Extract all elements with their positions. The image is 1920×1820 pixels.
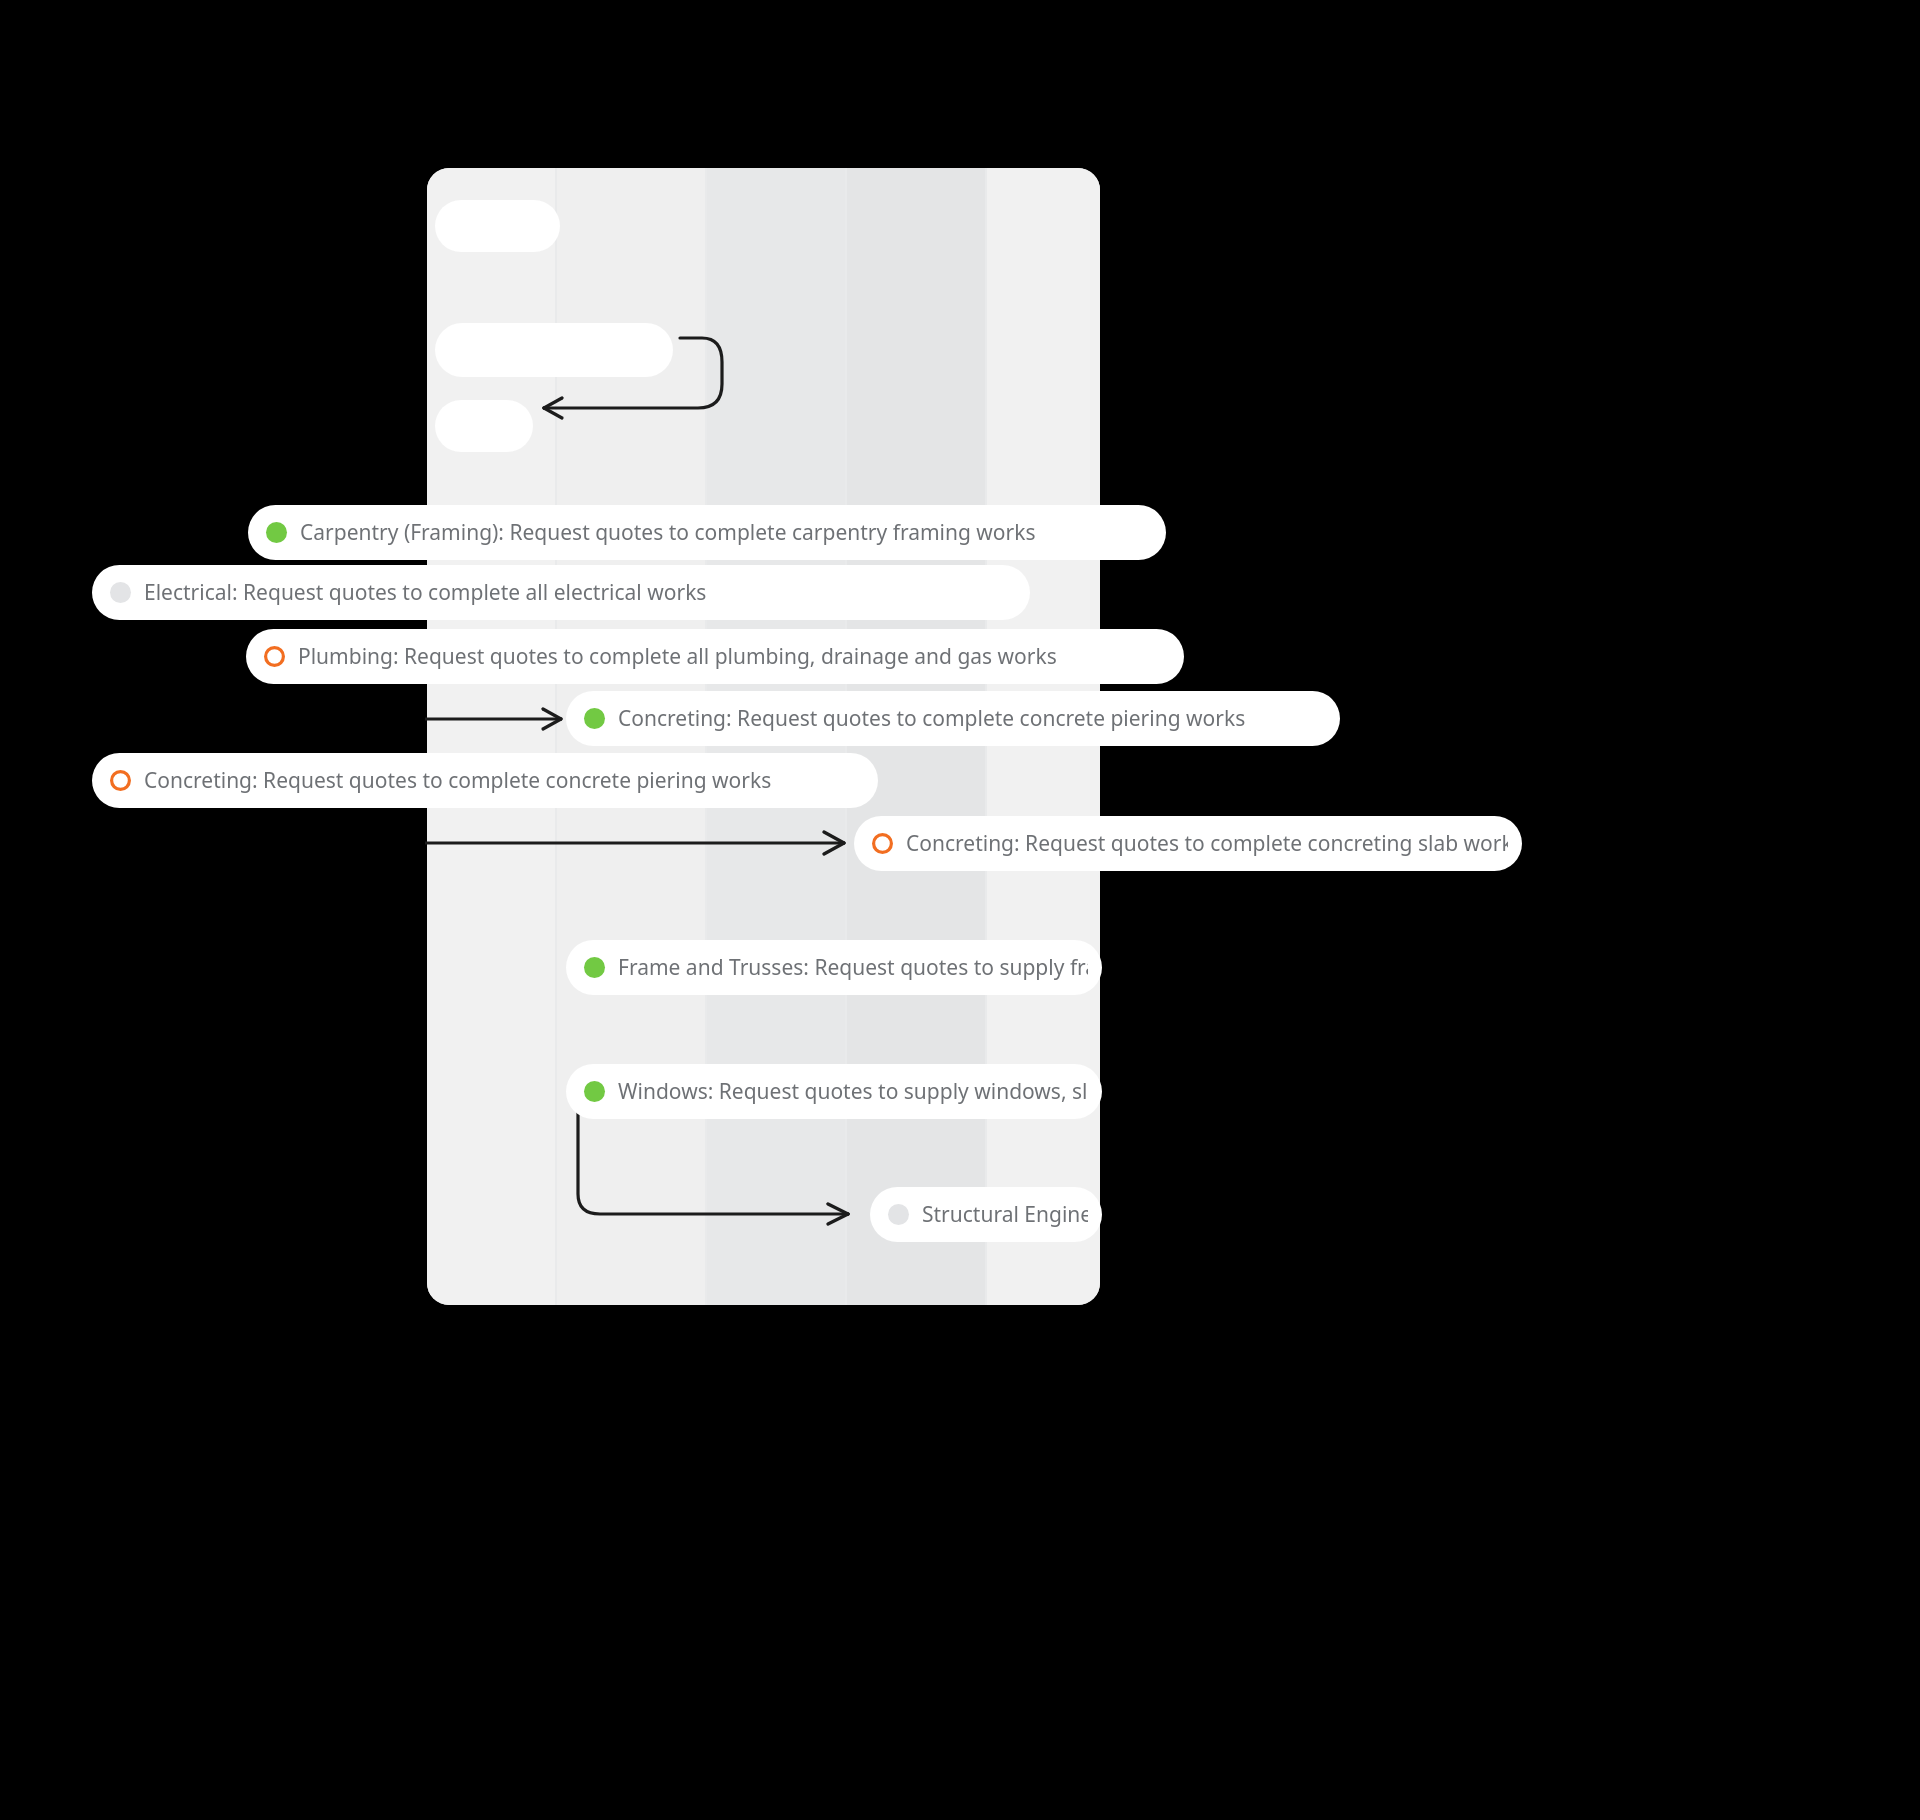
button[interactable]: Task bar [435,200,560,252]
button[interactable]: Plumbing: Request quotes to complete all… [246,629,1184,684]
staticText: Plumbing: Request quotes to complete all… [298,642,1057,671]
button[interactable]: Electrical: Request quotes to complete a… [92,565,1030,620]
staticText: Windows: Request quotes to supply window… [618,1077,1088,1106]
staticText: Concreting: Request quotes to complete c… [906,829,1508,858]
staticText: Carpentry (Framing): Request quotes to c… [300,518,1036,547]
staticText: Concreting: Request quotes to complete c… [144,766,772,795]
button[interactable]: Concreting: Request quotes to complete c… [854,816,1522,871]
button[interactable]: Task bar [435,400,533,452]
button[interactable]: Windows: Request quotes to supply window… [566,1064,1102,1119]
button[interactable]: Structural Engineer: Structural engineer… [870,1187,1102,1242]
button[interactable]: Frame and Trusses: Request quotes to sup… [566,940,1102,995]
staticText: Frame and Trusses: Request quotes to sup… [618,953,1088,982]
staticText: Structural Engineer: Structural engineer… [922,1200,1088,1229]
button[interactable]: Concreting: Request quotes to complete c… [566,691,1340,746]
staticText: Concreting: Request quotes to complete c… [618,704,1246,733]
staticText: Electrical: Request quotes to complete a… [144,578,707,607]
button[interactable]: Task bar [435,323,673,377]
button[interactable]: Concreting: Request quotes to complete c… [92,753,878,808]
button[interactable]: Carpentry (Framing): Request quotes to c… [248,505,1166,560]
